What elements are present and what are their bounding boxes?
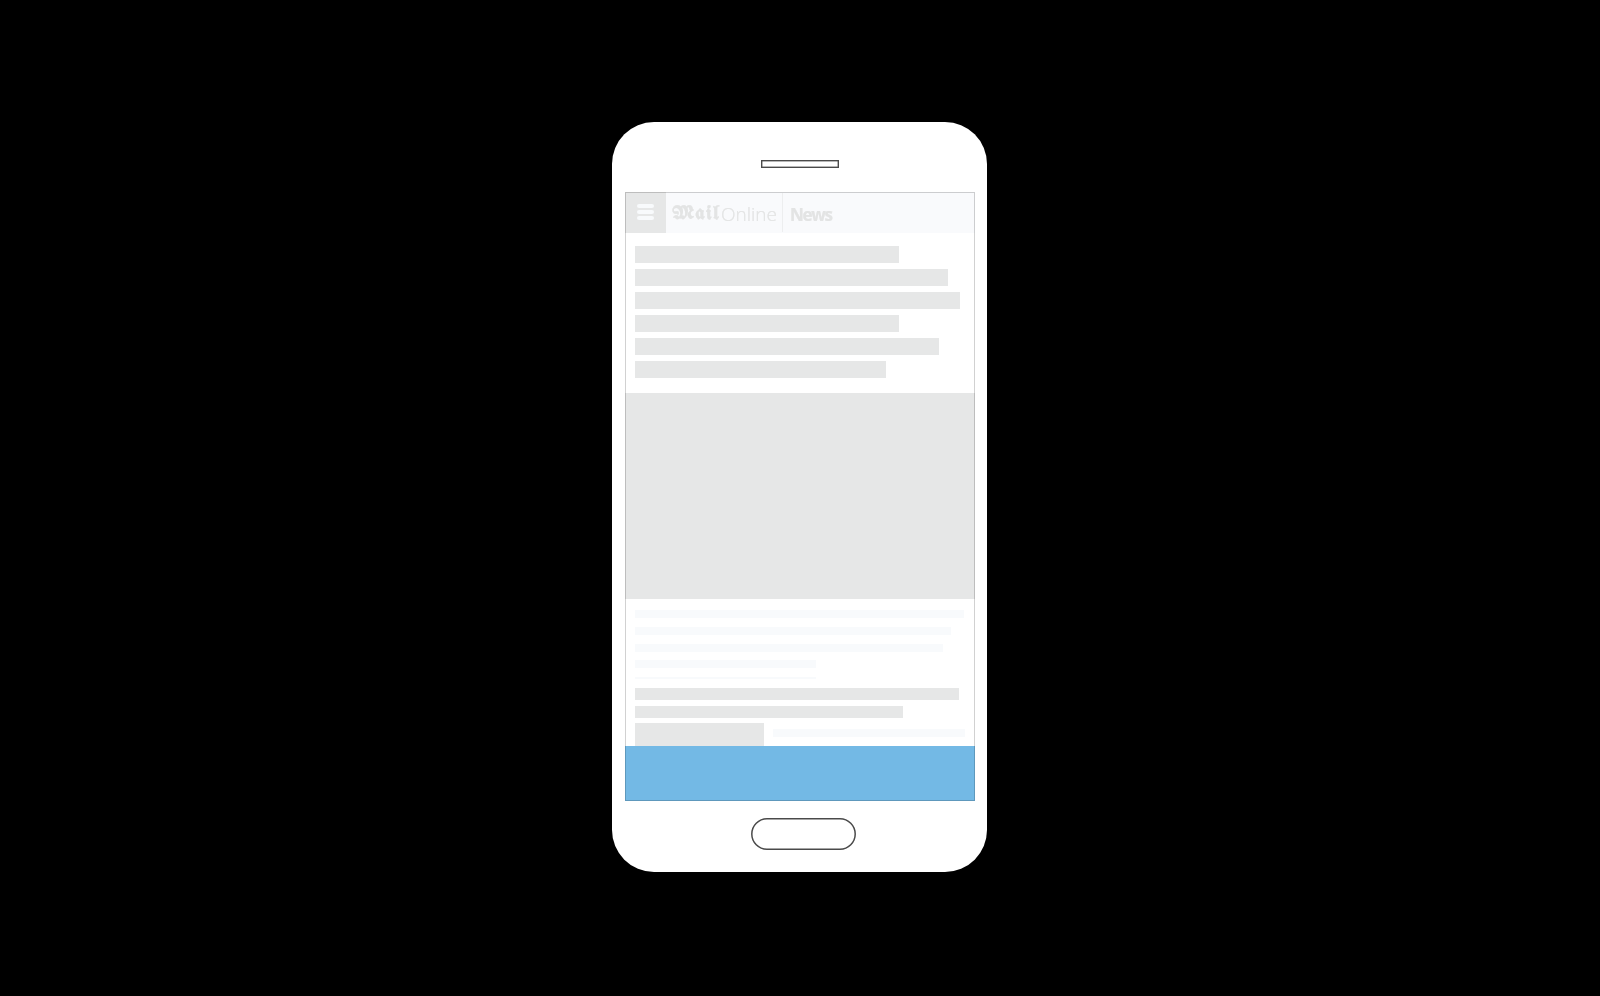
button[interactable]: Mail [672, 204, 720, 224]
button[interactable]: Open navigation menu [625, 192, 666, 233]
staticText: Online [721, 201, 777, 227]
button[interactable]: Continue [625, 746, 975, 801]
button[interactable]: Home [751, 818, 856, 850]
button[interactable]: News [790, 203, 832, 226]
